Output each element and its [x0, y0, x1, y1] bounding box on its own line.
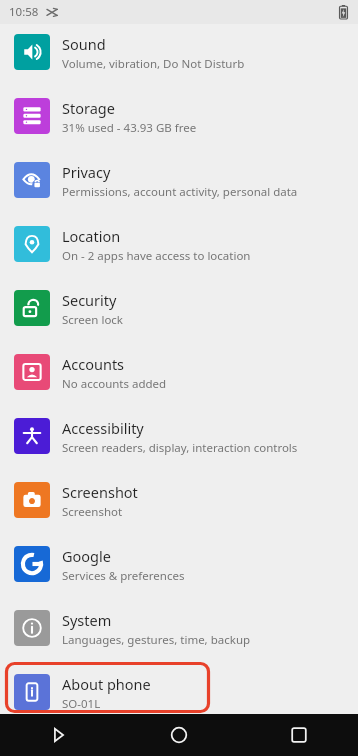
staticText: No accounts added [62, 376, 167, 392]
staticText: Privacy [62, 162, 111, 182]
staticText: Accounts [62, 354, 125, 374]
button[interactable]: Recent apps [282, 718, 316, 752]
staticText: Screen lock [62, 312, 124, 328]
staticText: Sound [62, 34, 106, 54]
staticText: Screenshot [62, 504, 123, 520]
button[interactable]: Accessibility [0, 418, 358, 468]
button[interactable]: Sound [0, 34, 358, 84]
staticText: About phone [62, 674, 151, 694]
button[interactable]: Location [0, 226, 358, 276]
button[interactable]: Back [42, 718, 76, 752]
button[interactable]: Storage [0, 98, 358, 148]
staticText: Services & preferences [62, 568, 185, 584]
staticText: Storage [62, 98, 115, 118]
staticText: Location [62, 226, 121, 246]
staticText: SO-01L [62, 696, 101, 712]
staticText: Screen readers, display, interaction con… [62, 440, 298, 456]
staticText: Languages, gestures, time, backup [62, 632, 251, 648]
button[interactable]: Privacy [0, 162, 358, 212]
other: Battery [339, 5, 348, 19]
staticText: On - 2 apps have access to location [62, 248, 251, 264]
staticText: System [62, 610, 112, 630]
button[interactable]: Google [0, 546, 358, 596]
staticText: 31% used - 43.93 GB free [62, 120, 197, 136]
staticText: Security [62, 290, 117, 310]
button[interactable]: Security [0, 290, 358, 340]
staticText: Screenshot [62, 482, 138, 502]
other: Data transfer [46, 6, 58, 18]
button[interactable]: Screenshot [0, 482, 358, 532]
button[interactable]: System [0, 610, 358, 660]
staticText: Permissions, account activity, personal … [62, 184, 298, 200]
staticText: Volume, vibration, Do Not Disturb [62, 56, 245, 72]
button[interactable]: About phone [0, 674, 358, 724]
button[interactable]: Home [162, 718, 196, 752]
staticText: Google [62, 546, 111, 566]
staticText: 10:58 [9, 4, 39, 20]
staticText: Accessibility [62, 418, 144, 438]
button[interactable]: Accounts [0, 354, 358, 404]
